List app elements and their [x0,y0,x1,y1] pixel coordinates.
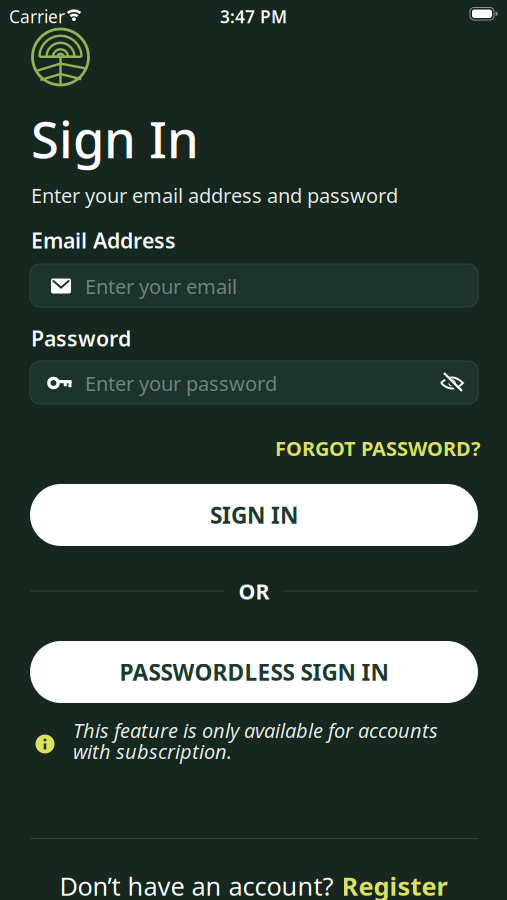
button[interactable]: Enter your email [30,264,478,307]
button[interactable]: FORGOT PASSWORD? [275,435,481,462]
staticText: Enter your email [85,273,237,300]
button[interactable]: SIGN IN [30,484,478,546]
staticText: OR [238,577,269,605]
staticText: Enter your password [85,370,277,397]
staticText: 3:47 PM [220,5,287,28]
button[interactable]: Register [341,869,447,900]
staticText: Enter your email address and password [31,182,398,209]
staticText: Password [31,324,131,352]
staticText: with subscription. [73,738,232,765]
button[interactable]: PASSWORDLESS SIGN IN [30,641,478,703]
staticText: Email Address [31,226,176,254]
staticText: FORGOT PASSWORD? [275,435,481,462]
staticText: Carrier [9,5,65,28]
staticText: SIGN IN [210,500,298,530]
staticText: Don’t have an account? [59,869,333,900]
staticText: Register [341,869,447,900]
staticText: PASSWORDLESS SIGN IN [119,657,388,687]
staticText: Sign In [31,105,199,172]
staticText: This feature is only available for accou… [73,717,438,744]
button[interactable]: Show password [435,366,469,400]
button[interactable]: Enter your password [30,361,478,404]
